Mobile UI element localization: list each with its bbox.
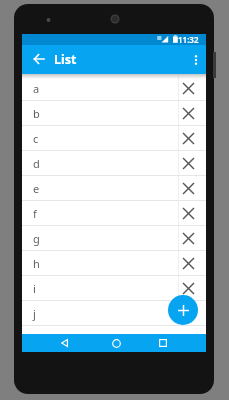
button[interactable]	[168, 295, 198, 325]
button[interactable]: h	[22, 251, 206, 276]
button[interactable]	[190, 48, 202, 72]
button[interactable]: a	[22, 76, 206, 101]
staticText: 11:32	[178, 34, 199, 45]
button[interactable]	[178, 128, 199, 149]
staticText: e	[33, 181, 40, 196]
button[interactable]	[178, 253, 199, 274]
staticText: j	[33, 306, 36, 321]
button[interactable]	[27, 47, 51, 71]
button[interactable]	[178, 178, 199, 199]
staticText: List	[54, 51, 77, 68]
button[interactable]	[178, 228, 199, 249]
button[interactable]	[153, 334, 173, 352]
button[interactable]: b	[22, 101, 206, 126]
button[interactable]	[178, 103, 199, 124]
button[interactable]: e	[22, 176, 206, 201]
staticText: b	[33, 106, 40, 121]
staticText: d	[33, 156, 40, 171]
button[interactable]	[178, 303, 199, 324]
button[interactable]	[178, 278, 199, 299]
button[interactable]: j	[22, 301, 206, 326]
button[interactable]	[178, 78, 199, 99]
button[interactable]: f	[22, 201, 206, 226]
button[interactable]	[178, 153, 199, 174]
staticText: i	[33, 281, 36, 296]
staticText: a	[33, 81, 40, 96]
button[interactable]	[178, 203, 199, 224]
button[interactable]: g	[22, 226, 206, 251]
button[interactable]: d	[22, 151, 206, 176]
button[interactable]	[54, 334, 74, 352]
button[interactable]: i	[22, 276, 206, 301]
staticText: f	[33, 206, 37, 221]
staticText: h	[33, 256, 40, 271]
button[interactable]: c	[22, 126, 206, 151]
button[interactable]	[106, 334, 126, 352]
staticText: c	[33, 131, 39, 146]
staticText: g	[33, 231, 40, 246]
